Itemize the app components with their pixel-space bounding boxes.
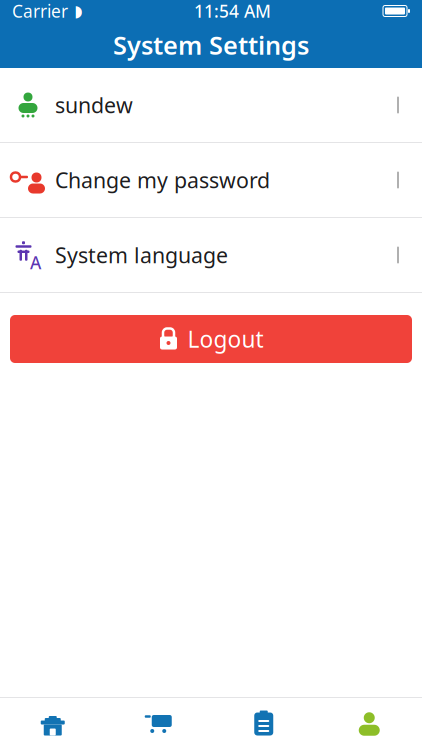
- staticText: A: [30, 251, 41, 274]
- staticText: Logout: [187, 324, 263, 354]
- button[interactable]: Logout: [10, 315, 412, 363]
- button[interactable]: Change my password: [0, 143, 422, 218]
- staticText: sundew: [55, 91, 133, 119]
- button[interactable]: Account: [316, 699, 422, 749]
- staticText: System Settings: [113, 28, 309, 62]
- button[interactable]: Cart: [105, 699, 211, 749]
- button[interactable]: sundew: [0, 68, 422, 143]
- button[interactable]: Home: [0, 699, 105, 749]
- staticText: ◗: [74, 2, 82, 20]
- staticText: 11:54 AM: [194, 0, 271, 22]
- button[interactable]: A: [0, 218, 422, 293]
- staticText: System language: [55, 241, 228, 269]
- staticText: Change my password: [55, 166, 270, 194]
- button[interactable]: Orders: [211, 699, 316, 749]
- staticText: Carrier: [12, 0, 68, 22]
